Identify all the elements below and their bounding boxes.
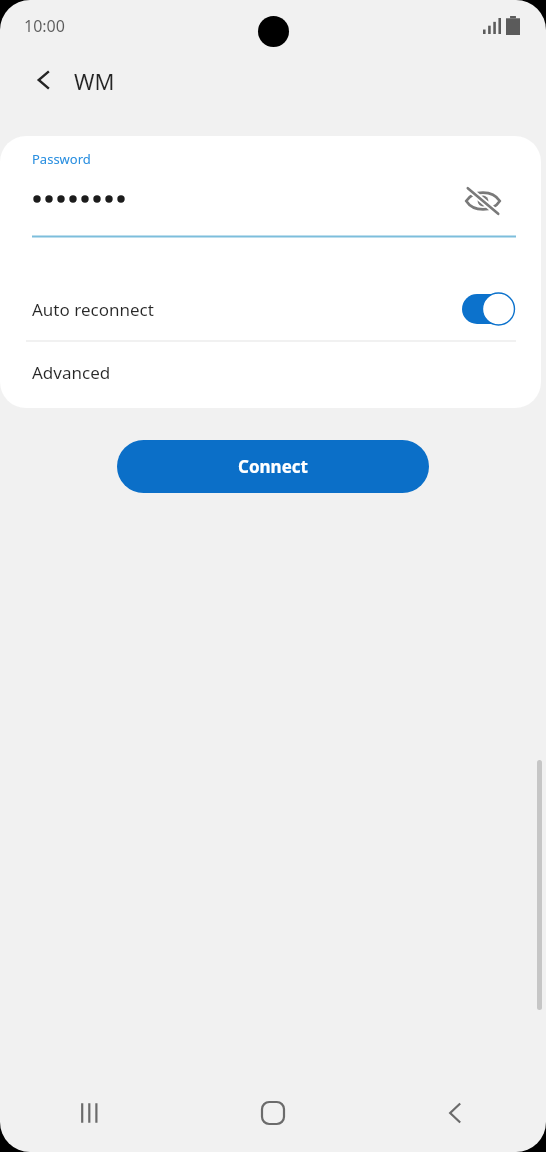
- button[interactable]: Show password: [458, 176, 508, 226]
- button[interactable]: Home: [182, 1080, 364, 1152]
- button[interactable]: Back: [22, 58, 66, 102]
- button[interactable]: Auto reconnect toggle: [462, 292, 518, 326]
- staticText: Advanced: [32, 361, 111, 384]
- staticText: 10:00: [24, 15, 65, 37]
- staticText: Auto reconnect: [32, 298, 154, 321]
- button[interactable]: Back: [364, 1080, 546, 1152]
- button[interactable]: Recent apps: [0, 1080, 182, 1152]
- staticText: WM: [74, 66, 115, 96]
- staticText: Password: [32, 150, 91, 168]
- button[interactable]: Auto reconnect: [0, 277, 541, 341]
- button[interactable]: Connect: [117, 440, 429, 493]
- button[interactable]: Advanced: [0, 342, 541, 402]
- staticText: Connect: [238, 455, 308, 478]
